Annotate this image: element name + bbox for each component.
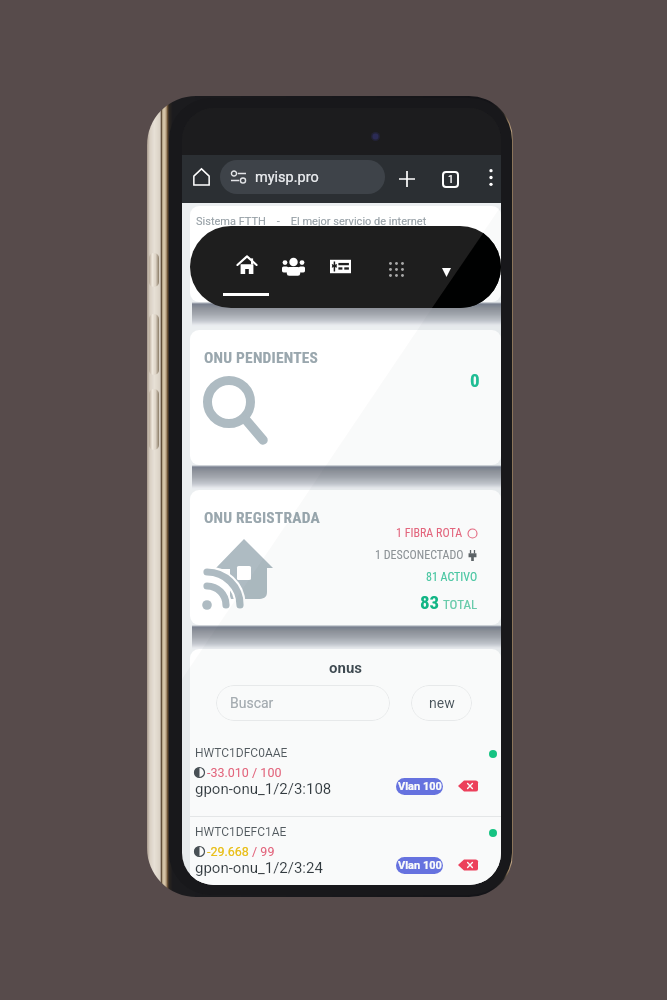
staticText: gpon-onu_1/2/3:24 xyxy=(195,859,323,877)
staticText: myisp.pro xyxy=(255,169,319,186)
button[interactable]: new xyxy=(411,685,472,721)
button[interactable]: Home xyxy=(186,162,216,192)
staticText: 0 xyxy=(470,369,480,391)
button[interactable]: New tab xyxy=(392,164,422,194)
staticText: 1 FIBRA ROTA xyxy=(396,526,463,540)
button[interactable]: Vlan 100 xyxy=(396,857,443,874)
staticText: Vlan 100 xyxy=(398,859,442,872)
button[interactable]: Tabs xyxy=(435,164,465,194)
staticText: TOTAL xyxy=(443,597,478,612)
staticText: 1 xyxy=(448,174,454,186)
staticText: 83 xyxy=(420,591,440,613)
staticText: -33.010 xyxy=(207,765,249,780)
button[interactable]: Buscar xyxy=(216,685,390,721)
button[interactable]: Aplicaciones xyxy=(381,254,411,284)
button[interactable]: Inicio xyxy=(230,248,264,282)
button[interactable]: HWTC1DEFC1AE xyxy=(190,818,501,885)
staticText: -29.668 xyxy=(207,844,249,859)
staticText: 1 DESCONECTADO xyxy=(375,548,464,562)
staticText: HWTC1DFC0AAE xyxy=(195,746,288,760)
staticText: / 99 xyxy=(249,844,275,859)
button[interactable]: More options xyxy=(478,164,501,190)
staticText: ONU REGISTRADA xyxy=(204,509,320,527)
button[interactable]: HWTC1DFC0AAE xyxy=(190,739,501,816)
staticText: Sistema FTTH - El mejor servicio de inte… xyxy=(196,215,427,228)
button[interactable]: Mas xyxy=(433,259,459,285)
button[interactable]: myisp.pro xyxy=(220,160,385,194)
button[interactable]: Vlan 100 xyxy=(396,778,443,795)
button[interactable]: Facturas xyxy=(323,249,357,283)
staticText: Vlan 100 xyxy=(398,780,442,793)
staticText: gpon-onu_1/2/3:108 xyxy=(195,780,332,798)
staticText: Buscar xyxy=(230,695,274,711)
button[interactable]: Eliminar xyxy=(458,779,478,793)
staticText: ONU PENDIENTES xyxy=(204,349,319,367)
button[interactable]: Eliminar xyxy=(458,858,478,872)
button[interactable]: Clientes xyxy=(276,249,310,283)
staticText: / 100 xyxy=(249,765,282,780)
staticText: new xyxy=(429,695,455,711)
staticText: 81 ACTIVO xyxy=(426,570,478,584)
staticText: onus xyxy=(190,659,501,677)
staticText: HWTC1DEFC1AE xyxy=(195,825,287,839)
